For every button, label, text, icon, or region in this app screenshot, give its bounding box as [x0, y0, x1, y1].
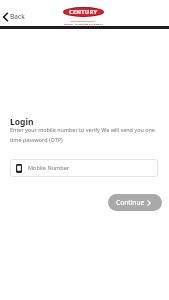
staticText: CENTURY [69, 8, 98, 16]
staticText: Back [10, 12, 25, 21]
staticText: Login [10, 116, 34, 128]
staticText: time password (OTP) [10, 136, 63, 143]
button[interactable]: Phone [10, 159, 158, 177]
other: Phone [16, 164, 22, 173]
button[interactable]: Continue [108, 194, 162, 211]
button[interactable]: Back [1, 11, 27, 22]
staticText: Enter your mobile number to verify We wi… [10, 126, 155, 133]
staticText: Mobile Number [28, 164, 70, 172]
other: Century logo [63, 7, 104, 25]
staticText: Best German Quality [71, 19, 96, 22]
staticText: Continue [116, 198, 145, 207]
staticText: Kitchen, Accessories & Hardware [64, 22, 104, 25]
